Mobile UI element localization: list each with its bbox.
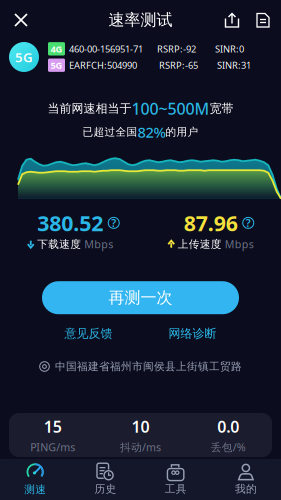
staticText: 测速 — [24, 483, 46, 496]
staticText: 5G — [15, 48, 33, 66]
button[interactable]: 历史 — [70, 463, 140, 495]
staticText: 我的 — [235, 482, 257, 495]
staticText: 下载速度 — [37, 238, 81, 251]
staticText: 的用户 — [165, 125, 198, 138]
staticText: 当前网速相当于 — [47, 101, 131, 116]
staticText: Mbps — [225, 237, 254, 251]
staticText: 82% — [137, 122, 165, 142]
staticText: 抖动/ms — [120, 440, 161, 454]
staticText: 工具 — [165, 482, 187, 495]
staticText: 意见反馈 — [64, 326, 112, 341]
staticText: 0.0 — [217, 416, 239, 437]
button[interactable]: Report — [250, 5, 276, 35]
staticText: 中国福建省福州市闽侯县上街镇工贸路 — [55, 360, 242, 373]
staticText: RSRP:-65 — [159, 59, 198, 71]
button[interactable]: Share — [214, 5, 250, 35]
staticText: 再测一次 — [108, 288, 172, 308]
button[interactable]: 测速 — [0, 463, 70, 496]
staticText: Mbps — [84, 237, 113, 251]
staticText: 历史 — [94, 482, 116, 495]
staticText: SINR:0 — [215, 43, 244, 55]
staticText: ? — [111, 216, 116, 230]
button[interactable]: 再测一次 — [42, 281, 239, 314]
button[interactable]: 工具 — [140, 463, 211, 495]
staticText: 4G — [50, 43, 62, 55]
staticText: 10 — [131, 416, 149, 437]
button[interactable]: Close — [5, 5, 37, 35]
staticText: 网络诊断 — [168, 326, 216, 341]
button[interactable]: 网络诊断 — [168, 326, 216, 341]
staticText: SINR:31 — [217, 59, 251, 71]
staticText: 上传速度 — [178, 238, 222, 251]
staticText: 已超过全国 — [82, 125, 137, 138]
staticText: 丢包/% — [211, 440, 246, 454]
staticText: PING/ms — [30, 440, 75, 454]
staticText: 速率测试 — [108, 10, 172, 30]
button[interactable]: 我的 — [211, 463, 281, 495]
staticText: 宽带 — [209, 101, 233, 116]
staticText: 5G — [50, 59, 62, 71]
staticText: 380.52 — [37, 209, 103, 237]
button[interactable]: 意见反馈 — [64, 326, 112, 341]
staticText: 100~500M — [131, 98, 209, 119]
staticText: 460-00-156951-71 — [69, 43, 143, 55]
staticText: RSRP:-92 — [157, 43, 196, 55]
staticText: 87.96 — [184, 209, 238, 237]
staticText: EARFCH:504990 — [69, 59, 137, 71]
staticText: ? — [246, 216, 251, 230]
staticText: 15 — [44, 416, 62, 437]
